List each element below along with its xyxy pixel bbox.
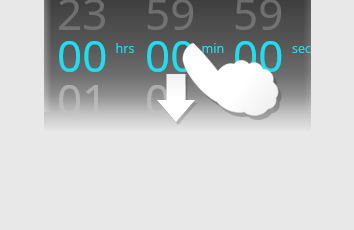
button[interactable]: Set duration: hours, minutes, seconds <box>44 0 311 132</box>
